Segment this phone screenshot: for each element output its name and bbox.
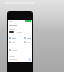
button[interactable]: Primary action	[9, 31, 14, 33]
button[interactable]: Open	[28, 58, 31, 61]
